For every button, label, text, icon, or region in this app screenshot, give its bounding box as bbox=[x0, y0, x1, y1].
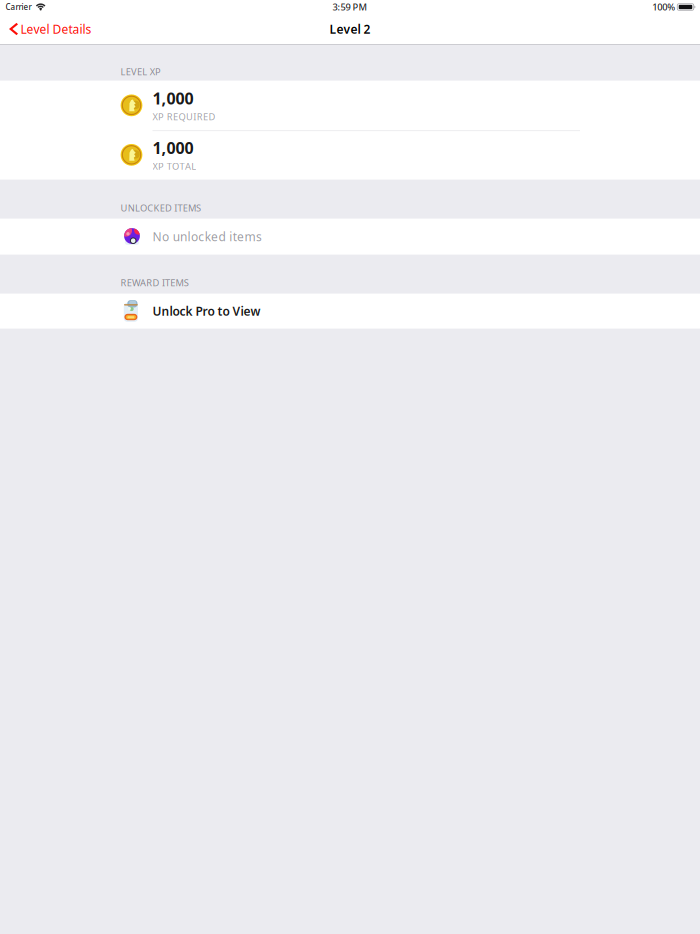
staticText: XP TOTAL bbox=[152, 160, 196, 172]
staticText: XP REQUIRED bbox=[152, 110, 215, 123]
staticText: 100% bbox=[652, 1, 675, 13]
staticText: REWARD ITEMS bbox=[120, 276, 189, 289]
staticText: Level Details bbox=[20, 21, 91, 37]
staticText: LEVEL XP bbox=[120, 65, 161, 78]
staticText: 1,000 bbox=[152, 88, 193, 109]
button[interactable]: Level Details bbox=[0, 14, 101, 44]
staticText: No unlocked items bbox=[152, 229, 262, 244]
button[interactable]: 1,000 bbox=[0, 130, 700, 180]
staticText: Carrier bbox=[5, 2, 31, 12]
staticText: Level 2 bbox=[329, 21, 370, 37]
button[interactable]: No unlocked items bbox=[0, 219, 700, 255]
button[interactable]: 1,000 bbox=[0, 81, 700, 130]
staticText: Unlock Pro to View bbox=[152, 303, 260, 319]
staticText: 3:59 PM bbox=[332, 1, 367, 13]
button[interactable]: Unlock Pro to View bbox=[0, 294, 700, 329]
staticText: 1,000 bbox=[152, 137, 193, 158]
staticText: UNLOCKED ITEMS bbox=[120, 202, 201, 214]
